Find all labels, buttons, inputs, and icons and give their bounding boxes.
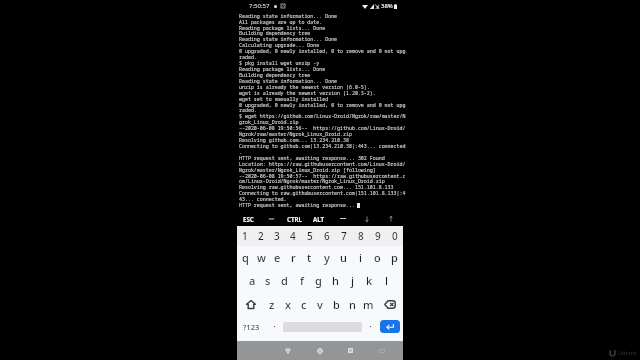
staticText: k — [366, 273, 373, 288]
button[interactable]: Dash — [331, 211, 355, 226]
staticText: raded. — [239, 54, 257, 61]
staticText: 1 — [242, 229, 248, 243]
staticText: m — [363, 297, 374, 312]
button[interactable]: Back — [272, 341, 304, 360]
staticText: . — [239, 149, 242, 156]
staticText: Resolving github.com... 13.234.210.38 — [239, 137, 349, 144]
button[interactable]: CTRL — [283, 211, 307, 226]
button[interactable]: y — [318, 246, 335, 268]
staticText: $ wget https://github.com/Linux-Droid/Ng… — [239, 113, 405, 120]
button[interactable]: i — [352, 246, 369, 268]
button[interactable]: o — [369, 246, 386, 268]
button[interactable]: b — [328, 292, 344, 316]
staticText: 7:50:57 — [249, 2, 270, 10]
button[interactable]: Arrow up — [379, 211, 403, 226]
button[interactable]: 9 — [369, 226, 386, 246]
button[interactable]: f — [293, 268, 310, 292]
button[interactable]: x — [280, 292, 296, 316]
staticText: r — [291, 250, 296, 265]
button[interactable]: 0 — [386, 226, 403, 246]
button[interactable]: Space — [283, 316, 362, 341]
button[interactable]: g — [310, 268, 327, 292]
staticText: i — [359, 250, 362, 265]
staticText: --2020-06-08 19:50:56-- https://github.c… — [239, 125, 405, 132]
staticText: y — [324, 250, 330, 265]
button[interactable]: 6 — [318, 226, 335, 246]
button[interactable]: Home — [304, 341, 335, 360]
button[interactable]: Arrow down — [355, 211, 379, 226]
button[interactable]: q — [237, 246, 253, 268]
staticText: grok_Linux_Droid.zip — [239, 119, 299, 126]
button[interactable]: v — [312, 292, 328, 316]
button[interactable]: c — [296, 292, 312, 316]
staticText: 4 — [290, 229, 296, 243]
staticText: a — [249, 273, 256, 288]
button[interactable]: h — [327, 268, 344, 292]
button[interactable]: 7 — [335, 226, 352, 246]
staticText: Udemy — [618, 349, 637, 356]
staticText: $ pkg install wget unzip -y — [239, 60, 320, 67]
staticText: o — [374, 250, 381, 265]
button[interactable]: 4 — [285, 226, 301, 246]
button[interactable]: Comma — [265, 316, 283, 341]
staticText: e — [274, 250, 281, 265]
button[interactable]: ?123 — [237, 316, 265, 341]
button[interactable]: u — [335, 246, 352, 268]
button[interactable]: s — [260, 268, 276, 292]
staticText: All packages are up to date. — [239, 19, 323, 26]
button[interactable]: j — [344, 268, 361, 292]
button[interactable]: m — [360, 292, 376, 316]
button[interactable]: Enter — [380, 320, 400, 333]
staticText: w — [257, 250, 266, 265]
button[interactable]: k — [361, 268, 378, 292]
staticText: CTRL — [287, 215, 303, 223]
button[interactable]: ESC — [237, 211, 260, 226]
button[interactable]: Tilde — [260, 211, 283, 226]
button[interactable]: 1 — [237, 226, 253, 246]
button[interactable]: 2 — [253, 226, 269, 246]
button[interactable]: Switch keyboard — [366, 341, 397, 360]
button[interactable]: Shift — [237, 292, 264, 316]
staticText: ?123 — [243, 322, 260, 332]
staticText: t — [307, 250, 312, 265]
staticText: c — [301, 297, 307, 312]
staticText: 3 — [274, 229, 280, 243]
staticText: Reading package lists... Done — [239, 25, 326, 32]
button[interactable]: r — [285, 246, 301, 268]
button[interactable]: t — [301, 246, 318, 268]
button[interactable]: d — [276, 268, 293, 292]
staticText: Reading state information... Done — [239, 13, 338, 20]
staticText: 9 — [375, 229, 381, 243]
button[interactable]: Period — [362, 316, 378, 341]
staticText: Connecting to raw.githubusercontent.com|… — [239, 190, 405, 197]
button[interactable]: ALT — [307, 211, 331, 226]
button[interactable]: a — [244, 268, 260, 292]
staticText: HTTP request sent, awaiting response... … — [239, 155, 385, 162]
staticText: HTTP request sent, awaiting response... — [239, 202, 358, 209]
button[interactable]: w — [253, 246, 269, 268]
button[interactable]: z — [264, 292, 280, 316]
staticText: s — [265, 273, 271, 288]
staticText: Location: https://raw.githubusercontent.… — [239, 161, 405, 168]
staticText: 0 upgraded, 0 newly installed, 0 to remo… — [239, 48, 405, 55]
staticText: 43... connected. — [239, 196, 287, 203]
button[interactable]: 5 — [301, 226, 318, 246]
staticText: Ngrok/raw/master/Ngrok_Linux_Droid.zip — [239, 131, 352, 138]
staticText: 6 — [324, 229, 330, 243]
staticText: raded. — [239, 107, 257, 114]
button[interactable]: n — [344, 292, 360, 316]
button[interactable]: 8 — [352, 226, 369, 246]
button[interactable]: e — [269, 246, 285, 268]
staticText: 5 — [307, 229, 313, 243]
staticText: ESC — [243, 215, 254, 223]
button[interactable]: l — [378, 268, 395, 292]
staticText: 38% — [381, 2, 393, 10]
button[interactable]: p — [386, 246, 403, 268]
staticText: p — [391, 250, 398, 265]
staticText: wget set to manually installed — [239, 96, 329, 103]
staticText: g — [315, 273, 322, 288]
button[interactable]: Backspace — [376, 292, 403, 316]
button[interactable]: 3 — [269, 226, 285, 246]
button[interactable]: Recents — [335, 341, 366, 360]
staticText: unzip is already the newest version (6.0… — [239, 84, 370, 91]
